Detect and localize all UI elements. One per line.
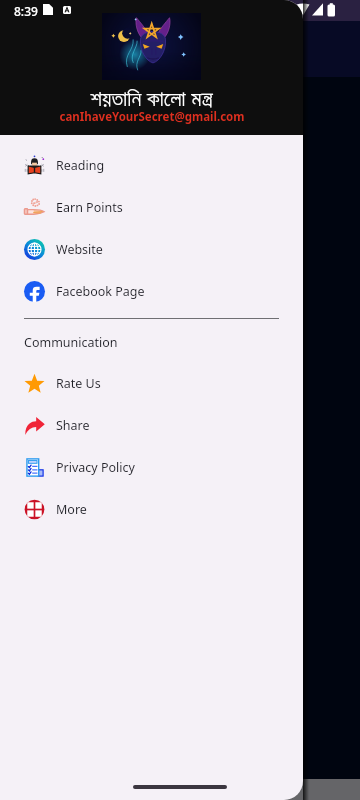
staticText: শয়তানি কালো মন্ত্র [90,82,213,112]
staticText: Reading [56,157,105,174]
staticText: Privacy Policy [56,459,135,476]
staticText: Share [56,417,90,434]
staticText: canIhaveYourSecret@gmail.com [59,109,245,125]
button[interactable]: Share [0,404,303,446]
staticText: 8:39 [14,3,38,19]
staticText: Website [56,241,103,258]
button[interactable]: Earn Points [0,186,303,228]
button[interactable]: Privacy Policy [0,446,303,488]
staticText: Communication [24,334,118,351]
button[interactable]: Website [0,228,303,270]
button[interactable]: Reading [0,144,303,186]
staticText: More [56,501,87,518]
staticText: Earn Points [56,199,123,216]
staticText: Rate Us [56,375,101,392]
staticText: Facebook Page [56,283,145,300]
button[interactable]: Rate Us [0,362,303,404]
button[interactable]: Facebook Page [0,270,303,312]
button[interactable]: More [0,488,303,530]
